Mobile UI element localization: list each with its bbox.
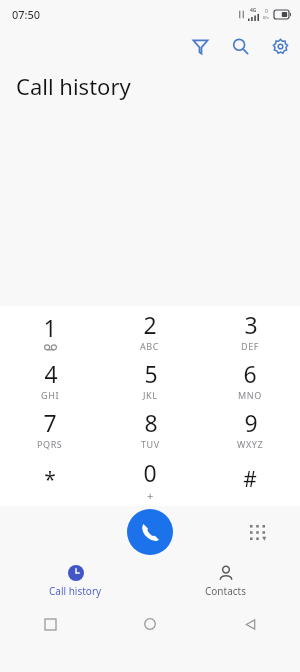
staticText: 1 [43, 312, 57, 343]
staticText: MNO [238, 389, 262, 401]
staticText: 0 [265, 8, 268, 15]
staticText: DEF [241, 340, 260, 352]
button[interactable]: 7 [0, 404, 100, 453]
staticText: TUV [141, 438, 160, 450]
button[interactable]: 8 [100, 404, 200, 453]
staticText: 8 [144, 407, 158, 438]
button[interactable]: 6 [200, 355, 300, 404]
button[interactable]: Home [100, 604, 200, 644]
staticText: WXYZ [237, 438, 264, 450]
staticText: 4G [250, 7, 257, 14]
staticText: PQRS [37, 438, 63, 450]
staticText: GHI [41, 389, 60, 401]
staticText: 2 [143, 309, 157, 340]
button[interactable]: * [0, 453, 100, 506]
staticText: JKL [143, 389, 158, 401]
button[interactable]: 9 [200, 404, 300, 453]
staticText: ABC [140, 340, 160, 352]
staticText: # [243, 465, 257, 494]
staticText: 07:50 [12, 7, 41, 22]
button[interactable]: Back [200, 604, 300, 644]
button[interactable]: Settings [260, 28, 300, 64]
staticText: * [44, 465, 56, 494]
staticText: 5 [144, 358, 158, 389]
button[interactable]: 3 [200, 306, 300, 355]
staticText: 4 [44, 358, 58, 389]
button[interactable]: Contacts [150, 558, 300, 604]
staticText: 0 [143, 457, 157, 488]
button[interactable]: Call [127, 509, 173, 555]
staticText: 9 [244, 407, 258, 438]
button[interactable]: 2 [100, 306, 200, 355]
button[interactable]: Filter [180, 28, 220, 64]
button[interactable]: 1 [0, 306, 100, 355]
staticText: B/s [263, 15, 270, 20]
button[interactable]: Call history [0, 558, 150, 604]
button[interactable]: # [200, 453, 300, 506]
button[interactable]: Search [220, 28, 260, 64]
button[interactable]: Hide keypad [240, 515, 274, 549]
staticText: 6 [243, 358, 257, 389]
staticText: Call history [49, 584, 102, 598]
staticText: Call history [16, 71, 131, 101]
button[interactable]: 0 [100, 453, 200, 506]
staticText: Contacts [205, 584, 246, 598]
button[interactable]: 5 [100, 355, 200, 404]
staticText: 7 [43, 407, 57, 438]
button[interactable]: Recents [0, 604, 100, 644]
staticText: + [147, 488, 154, 503]
staticText: 3 [244, 309, 258, 340]
button[interactable]: 4 [0, 355, 100, 404]
